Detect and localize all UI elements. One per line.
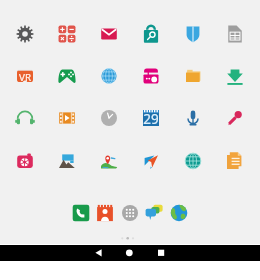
button[interactable]: Downloads [218, 59, 252, 93]
button[interactable]: Karaoke [218, 101, 252, 135]
button[interactable]: Internet [165, 199, 193, 227]
button[interactable]: Voice recorder [176, 101, 210, 135]
button[interactable]: Files [176, 59, 210, 93]
staticText: VR [19, 71, 31, 84]
button[interactable]: Video [50, 101, 84, 135]
button[interactable]: Settings [8, 17, 42, 51]
button[interactable]: Radio [134, 59, 168, 93]
button[interactable]: Back [88, 245, 109, 261]
button[interactable]: Calculator [50, 17, 84, 51]
button[interactable]: Clock [92, 101, 126, 135]
button[interactable]: Security [176, 17, 210, 51]
button[interactable]: Recent apps [151, 245, 172, 261]
button[interactable]: Music [8, 101, 42, 135]
button[interactable]: Contacts [91, 199, 119, 227]
button[interactable]: Spreadsheet [218, 17, 252, 51]
button[interactable]: Camera [8, 144, 42, 178]
button[interactable]: Phone [67, 199, 95, 227]
button[interactable]: Navigation [134, 144, 168, 178]
button[interactable]: Gallery [50, 144, 84, 178]
button[interactable]: Home [119, 245, 140, 261]
button[interactable]: Documents [218, 144, 252, 178]
button[interactable]: VR [8, 59, 42, 93]
button[interactable]: Store [134, 17, 168, 51]
button[interactable]: Messages [140, 199, 168, 227]
button[interactable]: Maps [92, 144, 126, 178]
button[interactable]: Network [176, 144, 210, 178]
button[interactable]: Games [50, 59, 84, 93]
button[interactable]: Apps [116, 199, 144, 227]
staticText: 29 [143, 110, 159, 128]
button[interactable]: Mail [92, 17, 126, 51]
button[interactable]: Calendar [134, 101, 168, 135]
button[interactable]: Browser [92, 59, 126, 93]
